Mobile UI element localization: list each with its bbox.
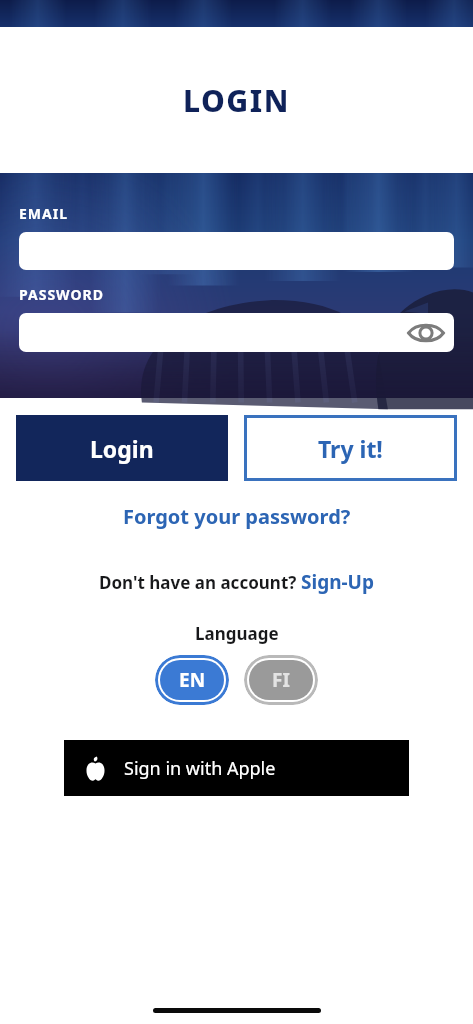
staticText: Forgot your password? [123, 503, 351, 530]
staticText: Login [90, 433, 154, 464]
button[interactable]: Sign in with Apple [64, 740, 409, 796]
staticText: EMAIL [19, 204, 69, 223]
button[interactable]: Try it! [244, 415, 457, 481]
button[interactable]: Show password [19, 313, 454, 352]
button[interactable]: EN [155, 655, 229, 705]
staticText: Sign-Up [301, 569, 374, 595]
button[interactable] [19, 232, 454, 270]
staticText: Sign in with Apple [124, 756, 276, 781]
button[interactable]: Forgot your password? [113, 499, 361, 534]
staticText: PASSWORD [19, 285, 105, 304]
staticText: LOGIN [183, 80, 290, 121]
button[interactable]: Login [16, 415, 228, 481]
staticText: Try it! [318, 433, 383, 464]
staticText: Don't have an account? [99, 571, 297, 594]
button[interactable]: FI [244, 655, 318, 705]
staticText: Language [195, 622, 279, 645]
staticText: EN [179, 667, 206, 693]
button[interactable]: Sign-Up [301, 565, 374, 599]
staticText: FI [272, 667, 290, 693]
button[interactable]: Show password [404, 313, 448, 352]
